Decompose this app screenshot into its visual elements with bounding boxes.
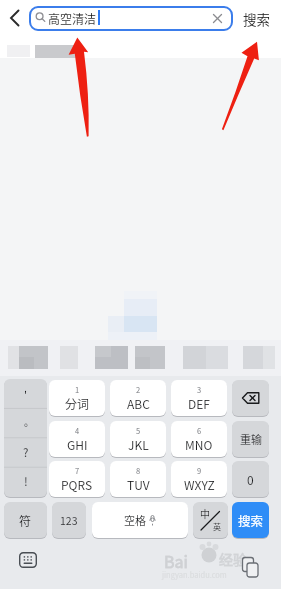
staticText: 。 [24, 414, 34, 428]
staticText: TUV [127, 476, 150, 493]
staticText: 6 [197, 425, 202, 436]
staticText: 123 [60, 513, 78, 528]
button[interactable]: 0 [232, 461, 269, 497]
button[interactable] [29, 6, 233, 31]
staticText: 符 [19, 512, 32, 529]
staticText: 1 [75, 384, 80, 395]
staticText: 5 [136, 425, 141, 436]
staticText: ABC [127, 395, 150, 412]
button[interactable]: 符 [4, 502, 47, 538]
button[interactable]: 空格 [92, 502, 188, 538]
button[interactable]: 6 [171, 421, 227, 457]
staticText: 高空清洁 [48, 10, 97, 27]
staticText: DEF [188, 395, 210, 412]
staticText: ! [24, 473, 28, 490]
staticText: 空格 [124, 512, 146, 528]
staticText: 中 [200, 506, 210, 520]
staticText: 2 [136, 384, 141, 395]
button[interactable]: 4 [49, 421, 105, 457]
staticText: 经验 [219, 549, 247, 569]
staticText: 搜索 [238, 511, 264, 529]
staticText: MNO [185, 436, 213, 453]
button[interactable]: 7 [49, 461, 105, 497]
staticText: 0 [247, 471, 254, 488]
staticText: ? [23, 444, 29, 461]
button[interactable]: 3 [171, 380, 227, 416]
staticText: PQRS [61, 476, 93, 493]
staticText: 分词 [65, 395, 90, 412]
button[interactable] [19, 552, 37, 568]
button[interactable]: 搜索 [243, 9, 270, 29]
staticText: 7 [75, 465, 80, 476]
button[interactable] [8, 8, 22, 28]
button[interactable]: 123 [52, 502, 86, 538]
staticText: 3 [197, 384, 202, 395]
staticText: WXYZ [184, 476, 215, 493]
button[interactable] [232, 380, 269, 416]
staticText: 4 [75, 425, 80, 436]
staticText: 9 [197, 465, 202, 476]
button[interactable] [241, 556, 261, 582]
staticText: 8 [136, 465, 141, 476]
staticText: Bai [164, 549, 188, 572]
button[interactable]: 2 [110, 380, 166, 416]
button[interactable]: 8 [110, 461, 166, 497]
staticText: ' [24, 386, 28, 402]
button[interactable]: 中 [193, 502, 228, 538]
button[interactable]: 5 [110, 421, 166, 457]
staticText: GHI [67, 436, 88, 453]
button[interactable]: 1 [49, 380, 105, 416]
button[interactable]: 搜索 [232, 502, 269, 538]
button[interactable]: 重输 [232, 421, 269, 457]
staticText: 英 [213, 521, 221, 533]
staticText: JKL [128, 436, 149, 453]
staticText: 重输 [240, 431, 262, 447]
button[interactable] [212, 13, 223, 24]
button[interactable] [4, 379, 47, 497]
button[interactable]: 9 [171, 461, 227, 497]
staticText: 搜索 [243, 9, 270, 29]
staticText: jingyan.baidu.com [162, 569, 227, 580]
